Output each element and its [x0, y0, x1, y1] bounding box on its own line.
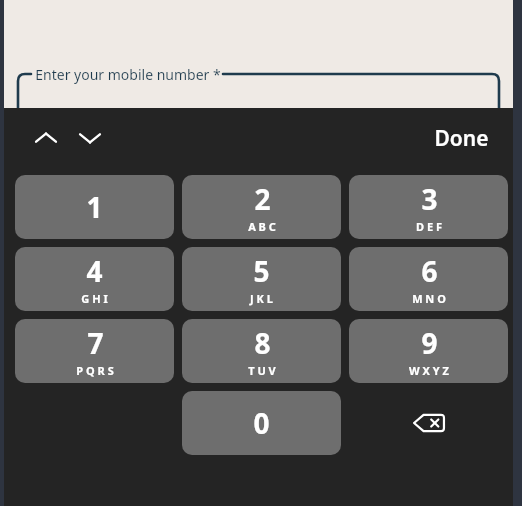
- staticText: 3: [421, 180, 438, 218]
- button[interactable]: 6: [349, 247, 508, 311]
- button[interactable]: 0: [182, 391, 341, 455]
- staticText: 7: [87, 324, 104, 362]
- staticText: M N O: [412, 291, 446, 306]
- staticText: 6: [421, 252, 438, 290]
- button[interactable]: Next field: [68, 116, 112, 160]
- button[interactable]: 7: [15, 319, 174, 383]
- staticText: Enter your mobile number *: [35, 65, 221, 84]
- staticText: P Q R S: [76, 363, 114, 378]
- staticText: 9: [421, 324, 438, 362]
- staticText: G H I: [81, 291, 108, 306]
- button[interactable]: 3: [349, 175, 508, 239]
- button[interactable]: Backspace: [349, 391, 508, 455]
- button[interactable]: 4: [15, 247, 174, 311]
- button[interactable]: Done: [426, 118, 497, 159]
- staticText: D E F: [416, 219, 442, 234]
- button[interactable]: 2: [182, 175, 341, 239]
- button[interactable]: Previous field: [24, 116, 68, 160]
- button[interactable]: Enter your mobile number *: [18, 74, 499, 130]
- staticText: 2: [254, 180, 271, 218]
- staticText: W X Y Z: [409, 363, 449, 378]
- staticText: 5: [253, 252, 270, 290]
- button[interactable]: 1: [15, 175, 174, 239]
- button[interactable]: 5: [182, 247, 341, 311]
- staticText: 4: [86, 252, 103, 290]
- button[interactable]: 8: [182, 319, 341, 383]
- staticText: T U V: [248, 363, 276, 378]
- staticText: J K L: [250, 291, 273, 306]
- button[interactable]: 9: [349, 319, 508, 383]
- staticText: 8: [254, 324, 271, 362]
- staticText: 1: [86, 188, 103, 226]
- staticText: A B C: [248, 219, 276, 234]
- staticText: Done: [434, 124, 489, 153]
- staticText: 0: [253, 404, 270, 442]
